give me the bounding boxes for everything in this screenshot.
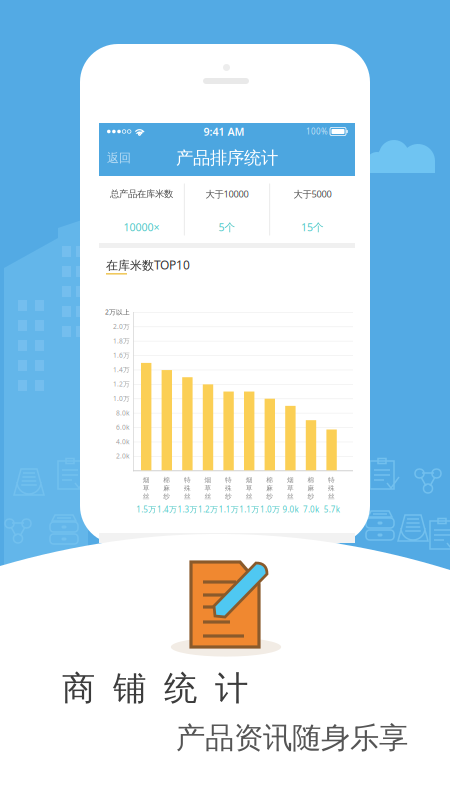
staticText: 草 bbox=[287, 484, 294, 492]
staticText: 大于10000 bbox=[205, 188, 248, 200]
staticText: 烟 bbox=[287, 476, 294, 484]
staticText: 特 bbox=[225, 476, 232, 484]
staticText: 2.0k bbox=[116, 452, 130, 460]
staticText: 6.0k bbox=[116, 423, 130, 432]
staticText: 2.0万 bbox=[113, 322, 130, 331]
staticText: 丝 bbox=[184, 492, 191, 501]
staticText: 返回 bbox=[107, 151, 131, 165]
staticText: 丝 bbox=[246, 492, 253, 501]
staticText: 1.0万 bbox=[260, 504, 280, 515]
staticText: 棉 bbox=[266, 476, 273, 484]
staticText: 麻 bbox=[266, 484, 273, 492]
staticText: 纱 bbox=[266, 492, 273, 501]
staticText: 1.6万 bbox=[113, 351, 130, 360]
staticText: 15个 bbox=[301, 220, 324, 234]
staticText: 殊 bbox=[328, 484, 335, 492]
staticText: 麻 bbox=[163, 484, 170, 492]
staticText: 9:41 AM bbox=[203, 124, 244, 139]
staticText: 100% bbox=[306, 126, 328, 137]
staticText: 棉 bbox=[307, 476, 314, 484]
staticText: 特 bbox=[184, 476, 191, 484]
staticText: 总产品在库米数 bbox=[110, 188, 173, 200]
staticText: 5个 bbox=[218, 220, 235, 234]
staticText: 殊 bbox=[184, 484, 191, 492]
staticText: 1.0万 bbox=[113, 394, 130, 403]
staticText: 棉 bbox=[163, 476, 170, 484]
staticText: 1.4万 bbox=[113, 365, 130, 374]
button[interactable]: 返回 bbox=[99, 140, 139, 176]
staticText: 产品排序统计 bbox=[176, 147, 278, 169]
staticText: 丝 bbox=[143, 492, 150, 501]
staticText: 殊 bbox=[225, 484, 232, 492]
staticText: 丝 bbox=[328, 492, 335, 501]
staticText: 10000× bbox=[124, 220, 160, 234]
staticText: 大于5000 bbox=[293, 188, 331, 200]
staticText: 特 bbox=[328, 476, 335, 484]
staticText: 2万以上 bbox=[105, 308, 130, 316]
staticText: 1.3万 bbox=[177, 504, 197, 515]
staticText: 7.0k bbox=[303, 504, 319, 515]
staticText: 麻 bbox=[307, 484, 314, 492]
staticText: 纱 bbox=[225, 492, 232, 501]
staticText: 烟 bbox=[246, 476, 253, 484]
staticText: 1.1万 bbox=[239, 504, 259, 515]
staticText: 4.0k bbox=[116, 437, 130, 446]
staticText: 纱 bbox=[307, 492, 314, 501]
staticText: 1.2万 bbox=[113, 380, 130, 388]
staticText: 产品资讯随身乐享 bbox=[176, 720, 408, 756]
staticText: 烟 bbox=[204, 476, 211, 484]
staticText: 1.8万 bbox=[113, 336, 130, 345]
staticText: 1.4万 bbox=[157, 504, 177, 515]
staticText: 1.2万 bbox=[198, 504, 218, 515]
staticText: 8.0k bbox=[116, 408, 130, 417]
staticText: 商铺统计 bbox=[62, 668, 248, 709]
staticText: 烟 bbox=[143, 476, 150, 484]
staticText: 5.7k bbox=[324, 504, 340, 515]
staticText: 草 bbox=[143, 484, 150, 492]
staticText: 纱 bbox=[163, 492, 170, 501]
staticText: 丝 bbox=[287, 492, 294, 501]
staticText: 丝 bbox=[204, 492, 211, 501]
staticText: 草 bbox=[204, 484, 211, 492]
staticText: 草 bbox=[246, 484, 253, 492]
staticText: 1.1万 bbox=[219, 504, 239, 515]
staticText: 1.5万 bbox=[136, 504, 156, 515]
staticText: 9.0k bbox=[282, 504, 298, 515]
staticText: 在库米数TOP10 bbox=[106, 257, 190, 273]
